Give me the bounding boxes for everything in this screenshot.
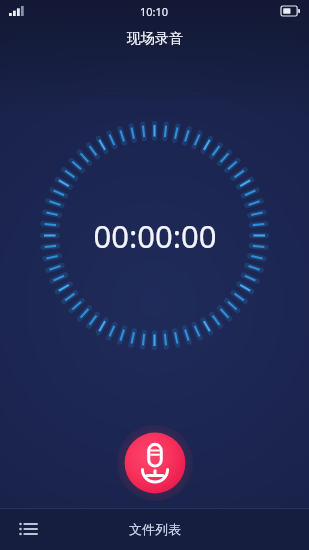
staticText: 文件列表 [129, 521, 181, 537]
staticText: 00:00:00 [93, 215, 217, 257]
button[interactable]: Start recording [117, 425, 193, 501]
button[interactable]: File list menu [8, 509, 48, 549]
button[interactable]: 文件列表 [0, 508, 309, 550]
staticText: 10:10 [140, 4, 169, 19]
staticText: 现场录音 [127, 30, 183, 48]
